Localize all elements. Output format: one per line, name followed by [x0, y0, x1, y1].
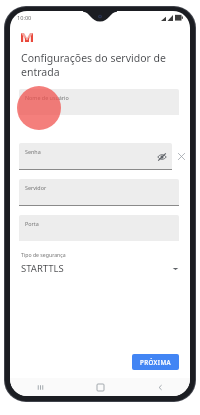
- staticText: Configurações do servidor de entrada: [21, 51, 166, 79]
- button[interactable]: Voltar: [130, 378, 190, 396]
- button[interactable]: PRÓXIMA: [132, 354, 179, 370]
- button[interactable]: Senha: [19, 143, 172, 170]
- staticText: Servidor: [25, 184, 47, 191]
- button[interactable]: Início: [70, 378, 130, 396]
- button[interactable]: Nome de usuário: [19, 89, 179, 115]
- staticText: Porta: [25, 220, 39, 227]
- staticText: PRÓXIMA: [140, 358, 171, 366]
- button[interactable]: Mostrar senha: [156, 151, 167, 162]
- button[interactable]: Porta: [19, 215, 179, 241]
- staticText: Senha: [25, 148, 41, 155]
- button[interactable]: Recentes: [10, 378, 70, 396]
- button[interactable]: Tipo de segurança: [21, 251, 179, 275]
- button[interactable]: Servidor: [19, 179, 179, 206]
- staticText: STARTTLS: [21, 262, 172, 275]
- button[interactable]: Fechar: [172, 142, 190, 170]
- staticText: Tipo de segurança: [21, 251, 66, 258]
- staticText: 10:00: [17, 14, 32, 22]
- staticText: Nome de usuário: [25, 94, 69, 101]
